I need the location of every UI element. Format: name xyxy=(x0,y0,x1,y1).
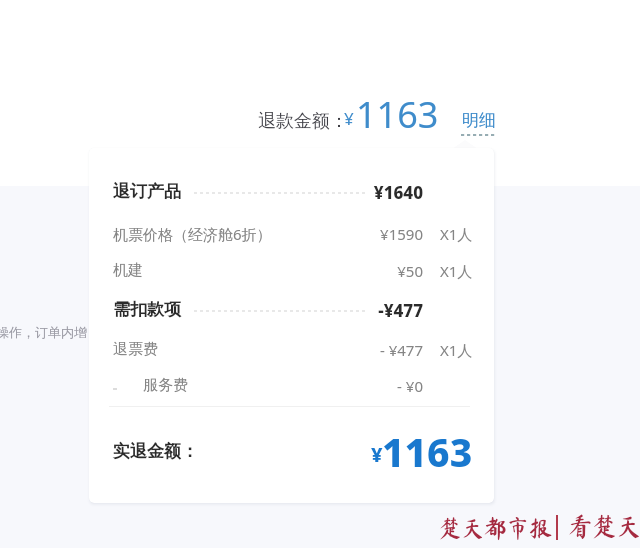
staticText: 机票价格（经济舱6折） xyxy=(113,224,272,244)
staticText: X1人 xyxy=(440,340,473,360)
staticText: 1163 xyxy=(356,90,439,139)
staticText: 退订产品 xyxy=(113,181,181,202)
staticText: - ¥477 xyxy=(379,340,423,360)
staticText: 退款金额： xyxy=(258,110,348,133)
staticText: ¥50 xyxy=(397,261,423,281)
staticText: -¥477 xyxy=(378,299,423,322)
staticText: ¥1640 xyxy=(373,181,423,204)
button[interactable]: 明细 xyxy=(461,110,496,136)
staticText: ¥ xyxy=(344,107,354,130)
staticText: 1163 xyxy=(382,425,473,478)
staticText: 服务费 xyxy=(143,376,188,395)
button[interactable]: 退订产品 xyxy=(89,148,494,503)
staticText: 退票费 xyxy=(113,340,158,359)
staticText: 需扣款项 xyxy=(113,299,181,320)
staticText: ¥ xyxy=(371,441,383,468)
staticText: - ¥0 xyxy=(397,376,423,396)
staticText: ¥1590 xyxy=(380,224,423,244)
staticText: 机建 xyxy=(113,261,143,280)
staticText: 实退金额： xyxy=(113,441,198,462)
staticText: 看楚天 xyxy=(567,513,640,539)
staticText: 操作，订单内增 xyxy=(0,324,87,340)
staticText: 楚天都市报 xyxy=(438,516,551,540)
staticText: X1人 xyxy=(440,261,473,281)
staticText: X1人 xyxy=(440,224,473,244)
staticText: 明细 xyxy=(462,110,496,131)
